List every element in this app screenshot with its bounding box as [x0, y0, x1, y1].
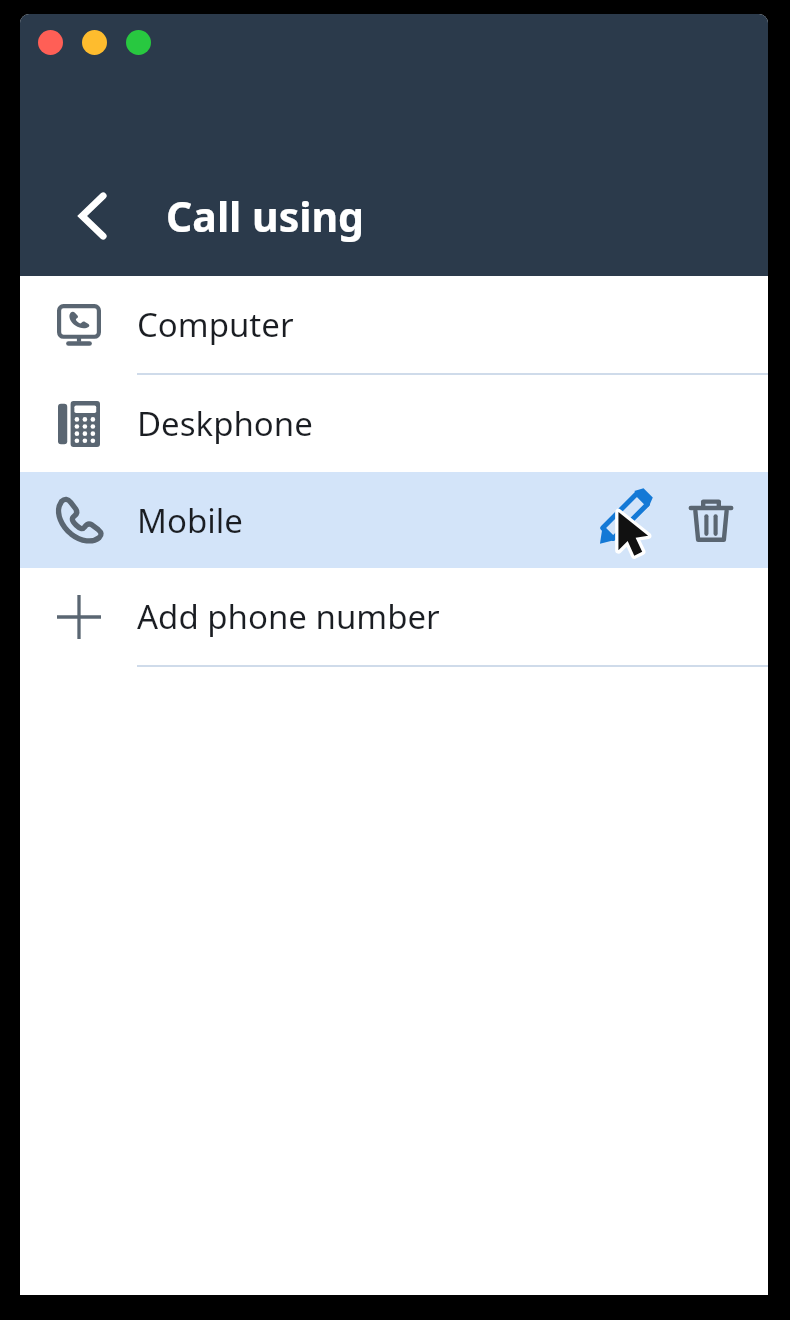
button[interactable]: Window control [38, 30, 63, 55]
staticText: Deskphone [137, 401, 313, 446]
button[interactable]: Back [48, 166, 138, 266]
button[interactable]: Window control [126, 30, 151, 55]
staticText: Call using [166, 188, 365, 244]
button[interactable]: Deskphone [20, 375, 768, 472]
button[interactable]: Window control [82, 30, 107, 55]
button[interactable]: Mobile [20, 472, 768, 568]
staticText: Computer [137, 302, 294, 347]
staticText: Mobile [137, 498, 243, 543]
button[interactable]: Edit [590, 481, 668, 559]
button[interactable]: Add phone number [20, 568, 768, 665]
button[interactable]: Computer [20, 276, 768, 373]
button[interactable]: Delete [672, 481, 750, 559]
staticText: Add phone number [137, 594, 440, 639]
